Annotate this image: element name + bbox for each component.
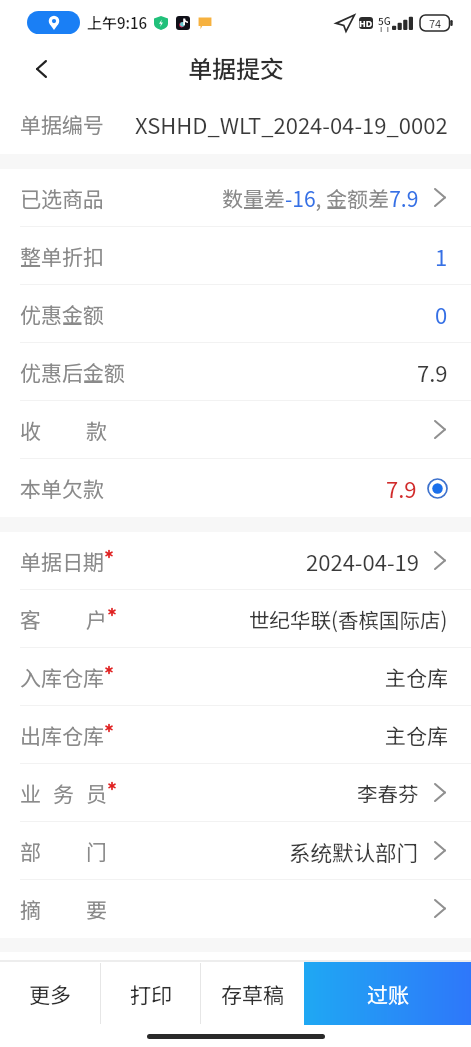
staticText: 1 [435, 240, 448, 272]
staticText: 2024-04-19 [306, 545, 419, 577]
button[interactable]: 优惠后金额 [0, 343, 471, 401]
staticText: 存草稿 [221, 979, 284, 1009]
button[interactable]: 部 [0, 822, 471, 880]
staticText: 整单折扣 [20, 241, 104, 271]
staticText: XSHHD_WLT_2024-04-19_0002 [135, 108, 448, 140]
staticText: 员 [86, 778, 107, 808]
button[interactable]: 整单折扣 [0, 227, 471, 285]
staticText: 优惠后金额 [20, 357, 125, 387]
button[interactable]: 入库仓库 [0, 648, 471, 706]
staticText: 部 [20, 836, 41, 866]
staticText: 款 [86, 415, 107, 445]
button[interactable]: 过账 [304, 962, 471, 1025]
button[interactable]: 打印 [101, 962, 200, 1025]
button[interactable]: 业 [0, 764, 471, 822]
staticText: HD [359, 17, 373, 29]
staticText: 客 [20, 604, 41, 634]
staticText: 已选商品 [20, 183, 104, 213]
button[interactable]: 摘 [0, 880, 471, 938]
staticText: 入库仓库 [20, 662, 104, 692]
button[interactable]: 单据日期 [0, 532, 471, 590]
staticText: 过账 [367, 979, 409, 1009]
staticText: 务 [53, 778, 74, 808]
staticText: 主仓库 [385, 720, 448, 750]
button[interactable]: 单据编号 [0, 94, 471, 154]
staticText: 业 [20, 778, 41, 808]
button[interactable]: 本单欠款 [0, 459, 471, 517]
staticText: 单据编号 [20, 109, 104, 139]
staticText: 上午9:16 [87, 12, 148, 34]
staticText: 单据日期 [20, 546, 104, 576]
staticText: 7.9 [386, 472, 417, 504]
staticText: 户 [86, 604, 107, 634]
button[interactable]: 存草稿 [201, 962, 304, 1025]
button[interactable]: Back [0, 45, 82, 94]
button[interactable]: 更多 [0, 962, 100, 1025]
staticText: 74 [429, 15, 442, 31]
staticText: 主仓库 [385, 662, 448, 692]
staticText: 系统默认部门 [289, 836, 419, 867]
staticText: 数量差-16, 金额差7.9 [222, 183, 419, 213]
staticText: 收 [20, 415, 41, 445]
staticText: 世纪华联(香槟国际店) [249, 604, 448, 634]
staticText: 0 [435, 298, 448, 330]
staticText: 李春芬 [357, 778, 419, 808]
button[interactable]: 出库仓库 [0, 706, 471, 764]
staticText: 本单欠款 [20, 473, 104, 503]
button[interactable]: 已选商品 [0, 169, 471, 227]
staticText: 出库仓库 [20, 720, 104, 750]
staticText: 更多 [29, 979, 71, 1009]
staticText: 打印 [130, 979, 172, 1009]
staticText: 单据提交 [188, 50, 284, 85]
button[interactable]: 优惠金额 [0, 285, 471, 343]
staticText: 7.9 [417, 356, 448, 388]
button[interactable]: 客 [0, 590, 471, 648]
staticText: 摘 [20, 894, 41, 924]
staticText: 5G [378, 13, 391, 27]
staticText: 门 [86, 836, 107, 866]
button[interactable]: 收 [0, 401, 471, 459]
staticText: 要 [86, 894, 107, 924]
staticText: 优惠金额 [20, 299, 104, 329]
